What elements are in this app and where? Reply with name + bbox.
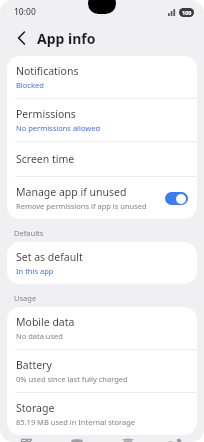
button[interactable]: Manage app if unused: [7, 177, 197, 219]
button[interactable]: Archive: [51, 435, 102, 442]
button[interactable]: Screen time: [7, 142, 197, 176]
button[interactable]: Mobile data: [7, 307, 197, 349]
staticText: In this app: [16, 266, 54, 276]
staticText: Battery: [16, 358, 52, 372]
button[interactable]: Force stop: [153, 435, 204, 442]
staticText: Blocked: [16, 80, 44, 90]
button[interactable]: Battery: [7, 350, 197, 392]
staticText: 10:00: [14, 6, 36, 18]
staticText: 0% used since last fully charged: [16, 374, 128, 384]
button[interactable]: Back: [11, 28, 31, 48]
staticText: Remove permissions if app is unused: [16, 201, 147, 211]
staticText: Storage: [16, 401, 55, 415]
staticText: No permissions allowed: [16, 123, 101, 133]
button[interactable]: Storage: [7, 393, 197, 435]
button[interactable]: Uninstall: [102, 435, 153, 442]
staticText: Set as default: [16, 250, 83, 264]
staticText: App info: [37, 29, 96, 48]
button[interactable]: Permissions: [7, 99, 197, 141]
staticText: Defaults: [14, 228, 44, 238]
staticText: Mobile data: [16, 315, 75, 329]
button[interactable]: Open: [0, 435, 51, 442]
staticText: Screen time: [16, 152, 75, 166]
staticText: Permissions: [16, 107, 76, 121]
staticText: No data used: [16, 331, 63, 341]
staticText: Notifications: [16, 64, 79, 78]
staticText: 100: [182, 9, 192, 16]
staticText: Manage app if unused: [16, 185, 127, 199]
button[interactable]: Manage app if unused toggle: [165, 192, 188, 205]
button[interactable]: Set as default: [7, 242, 197, 284]
staticText: Usage: [14, 293, 37, 303]
button[interactable]: Notifications: [7, 56, 197, 98]
staticText: 85.19 MB used in Internal storage: [16, 417, 136, 427]
